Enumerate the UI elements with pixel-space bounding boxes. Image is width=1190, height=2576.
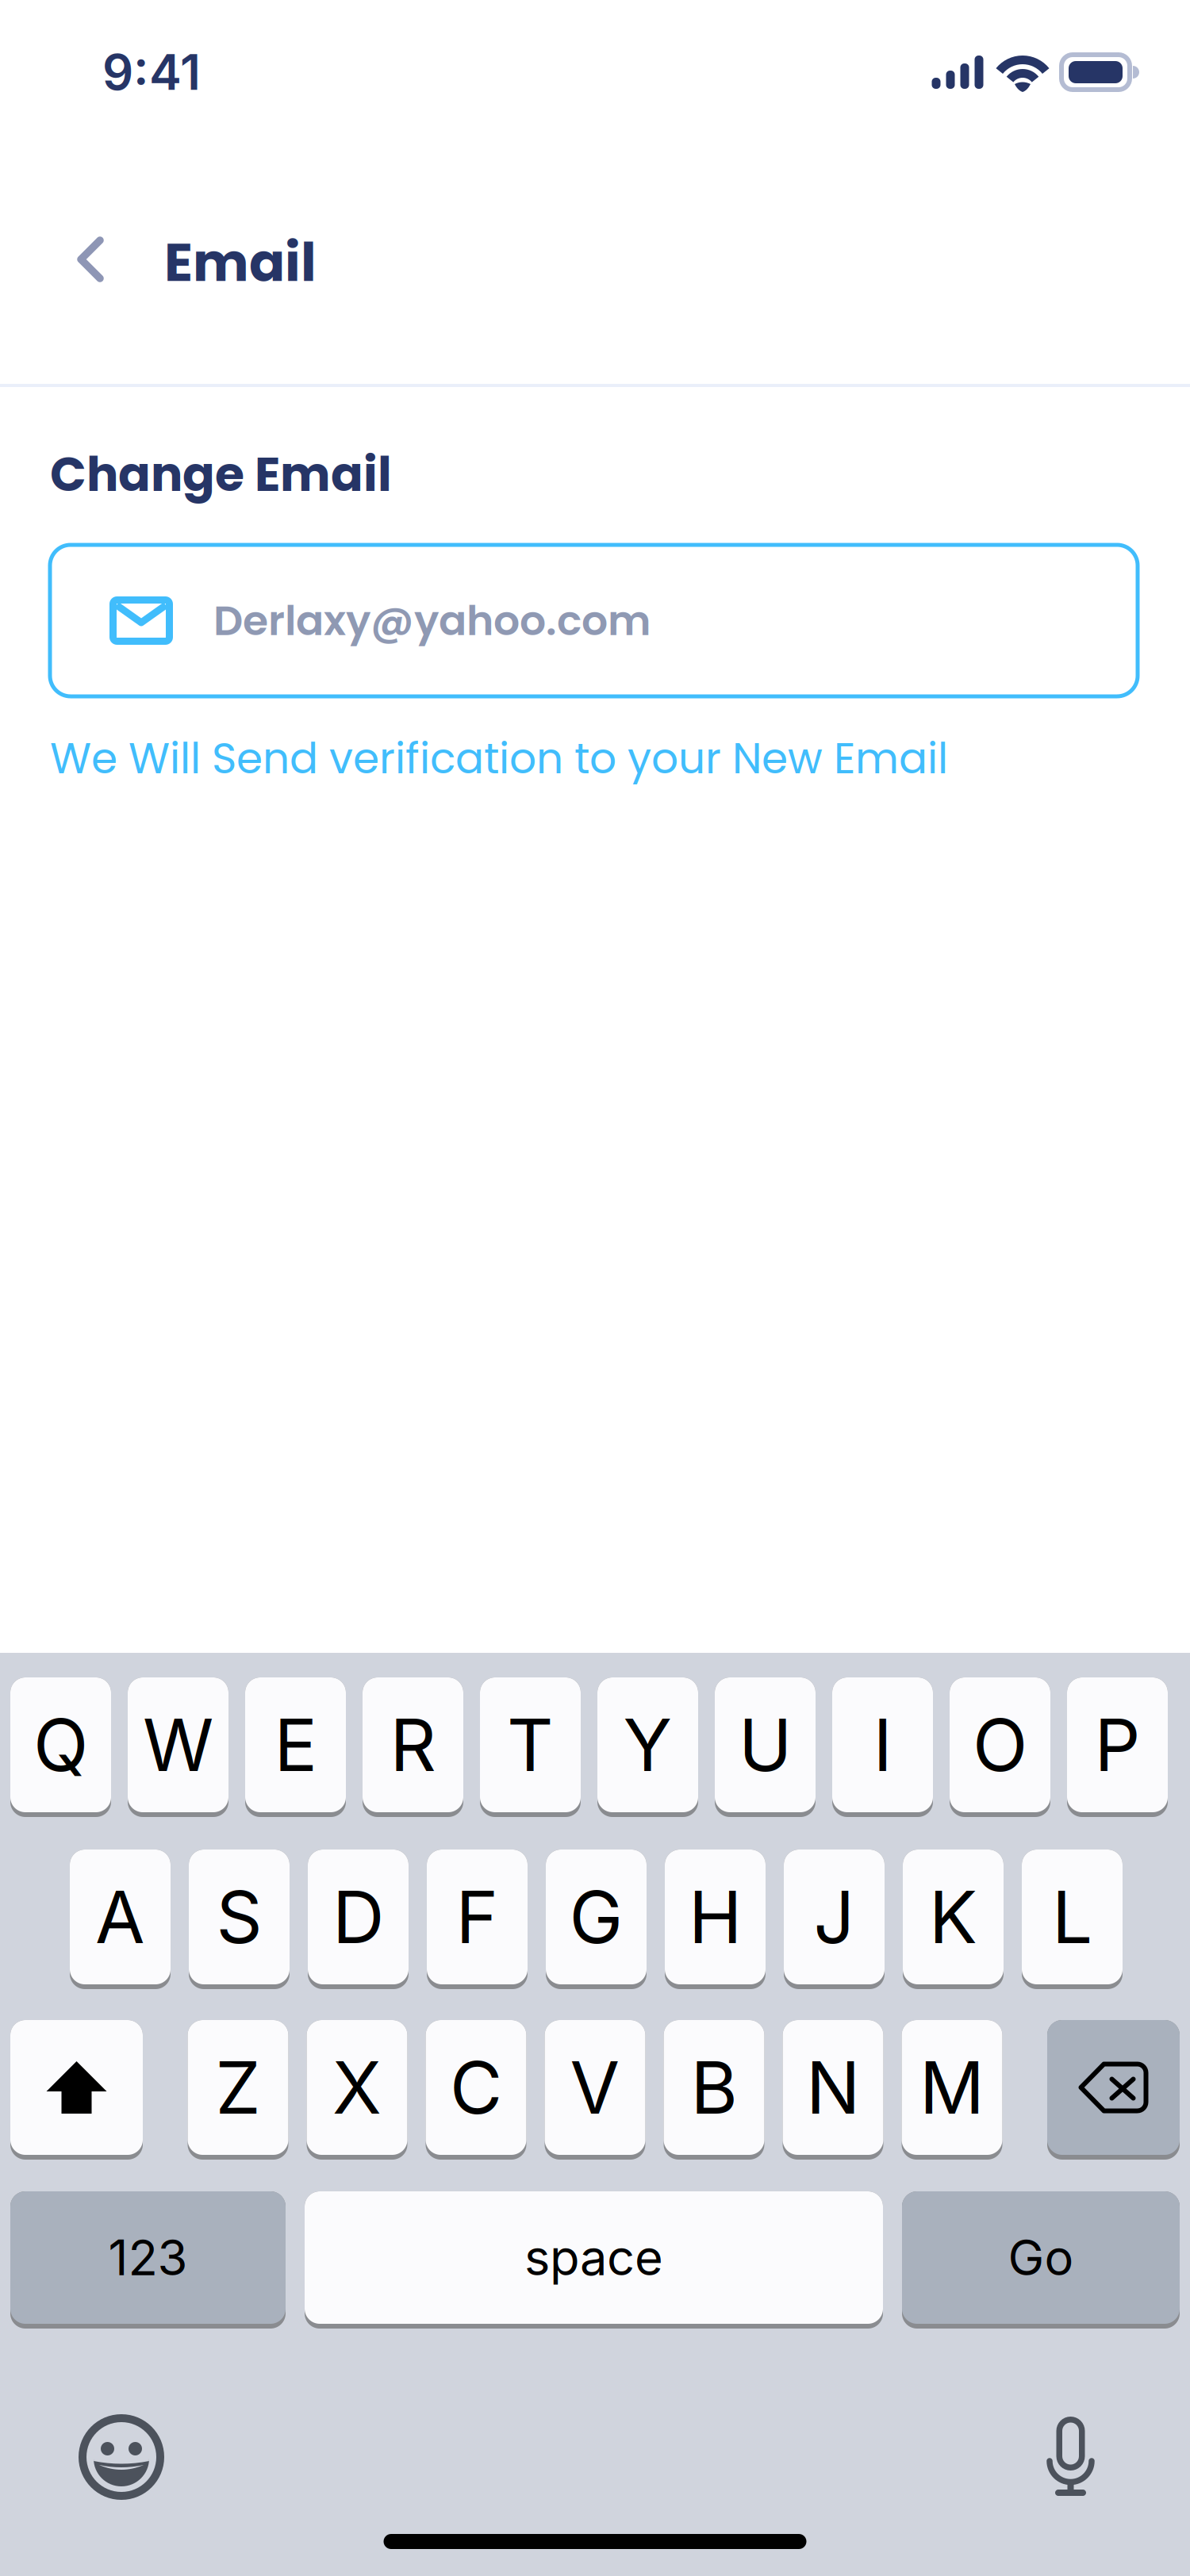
button[interactable]: V	[545, 2020, 645, 2160]
button[interactable]: R	[363, 1677, 463, 1817]
button[interactable]: Emoji	[79, 2414, 164, 2500]
button[interactable]: J	[784, 1850, 885, 1989]
button[interactable]: P	[1067, 1677, 1168, 1817]
button[interactable]: S	[189, 1850, 290, 1989]
staticText: U	[739, 1701, 792, 1788]
button[interactable]: X	[307, 2020, 407, 2160]
button[interactable]: T	[480, 1677, 581, 1817]
staticText: D	[332, 1873, 384, 1960]
staticText: Change Email	[50, 441, 392, 508]
button[interactable]: Q	[10, 1677, 111, 1817]
button[interactable]: space	[305, 2191, 883, 2329]
button[interactable]: H	[665, 1850, 766, 1989]
button[interactable]: L	[1022, 1850, 1123, 1989]
button[interactable]: K	[903, 1850, 1004, 1989]
staticText: E	[274, 1701, 317, 1788]
staticText: S	[216, 1873, 262, 1960]
staticText: Go	[1008, 2228, 1074, 2287]
button[interactable]: Z	[188, 2020, 288, 2160]
button[interactable]: Derlaxy@yahoo.com	[50, 545, 1138, 696]
staticText: T	[507, 1701, 554, 1788]
staticText: C	[450, 2044, 502, 2131]
button[interactable]: W	[128, 1677, 228, 1817]
staticText: space	[524, 2228, 663, 2287]
staticText: G	[569, 1873, 623, 1960]
staticText: V	[570, 2044, 620, 2131]
staticText: P	[1094, 1701, 1140, 1788]
staticText: W	[143, 1701, 213, 1788]
button[interactable]: G	[546, 1850, 647, 1989]
staticText: M	[919, 2044, 985, 2131]
button[interactable]: D	[308, 1850, 409, 1989]
staticText: B	[691, 2044, 737, 2131]
button[interactable]: E	[245, 1677, 346, 1817]
staticText: X	[332, 2044, 382, 2131]
button[interactable]: O	[950, 1677, 1050, 1817]
button[interactable]: U	[715, 1677, 816, 1817]
button[interactable]: I	[832, 1677, 933, 1817]
staticText: Y	[623, 1701, 672, 1788]
staticText: A	[95, 1873, 145, 1960]
button[interactable]: C	[426, 2020, 526, 2160]
staticText: O	[973, 1701, 1027, 1788]
button[interactable]: F	[427, 1850, 528, 1989]
staticText: Q	[33, 1701, 88, 1788]
staticText: H	[689, 1873, 742, 1960]
staticText: N	[806, 2044, 860, 2131]
staticText: 9:41	[102, 43, 201, 102]
staticText: F	[456, 1873, 499, 1960]
staticText: Email	[164, 225, 317, 299]
staticText: Derlaxy@yahoo.com	[213, 592, 651, 649]
button[interactable]: A	[70, 1850, 171, 1989]
button[interactable]: 123	[10, 2191, 286, 2329]
staticText: R	[390, 1701, 436, 1788]
staticText: J	[814, 1873, 855, 1960]
staticText: I	[873, 1701, 892, 1788]
button[interactable]: M	[902, 2020, 1002, 2160]
button[interactable]: B	[664, 2020, 764, 2160]
button[interactable]: Delete	[1047, 2020, 1180, 2160]
button[interactable]: Shift	[10, 2020, 143, 2160]
button[interactable]: Dictate	[1046, 2417, 1095, 2496]
staticText: Z	[215, 2044, 261, 2131]
button[interactable]: Y	[597, 1677, 698, 1817]
staticText: 123	[108, 2228, 188, 2287]
staticText: K	[929, 1873, 977, 1960]
staticText: We Will Send verification to your New Em…	[50, 729, 948, 788]
staticText: L	[1052, 1873, 1092, 1960]
button[interactable]: Back	[0, 212, 124, 316]
button[interactable]: Go	[902, 2191, 1180, 2329]
button[interactable]: N	[783, 2020, 883, 2160]
